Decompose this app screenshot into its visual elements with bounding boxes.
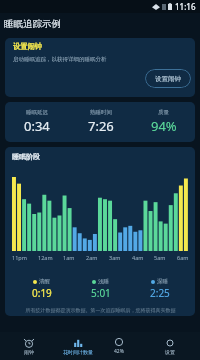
staticText: 0:19	[32, 286, 52, 300]
staticText: 闹钟	[24, 349, 34, 355]
staticText: 5am	[154, 254, 166, 261]
staticText: 3am	[109, 254, 121, 261]
button[interactable]: Alarm	[0, 332, 58, 360]
button[interactable]: Battery	[98, 332, 140, 360]
staticText: 熟睡时间	[90, 109, 112, 116]
staticText: 设置闹钟	[13, 42, 42, 51]
staticText: 4am	[132, 254, 144, 261]
staticText: 94%	[151, 117, 177, 135]
staticText: 睡眠阶段	[12, 152, 40, 161]
staticText: 启动睡眠追踪，以获得详细的睡眠分析	[13, 56, 107, 63]
button[interactable]: 熟睡时间	[69, 102, 132, 142]
staticText: 所有统计数据都是演示数据。第一次追踪睡眠后，您将获得真实数据	[12, 307, 189, 313]
staticText: 清醒	[39, 278, 50, 285]
staticText: 深睡	[157, 278, 168, 285]
staticText: 11pm	[12, 254, 27, 261]
staticText: 浅睡	[98, 278, 109, 285]
staticText: 7:26	[88, 117, 114, 135]
staticText: 0:34	[24, 117, 50, 135]
button[interactable]: Statistics	[58, 332, 98, 360]
staticText: 设置	[165, 349, 175, 355]
staticText: 睡眠延迟	[26, 109, 48, 116]
staticText: 质量	[158, 109, 169, 116]
staticText: 42%	[114, 348, 124, 355]
staticText: 11:16	[175, 1, 196, 12]
staticText: 睡眠追踪示例	[4, 18, 61, 30]
button[interactable]: 设置闹钟	[145, 69, 191, 88]
staticText: 设置闹钟	[155, 75, 181, 83]
button[interactable]: Settings	[140, 332, 200, 360]
button[interactable]: 质量	[132, 102, 195, 142]
staticText: 12am	[38, 254, 53, 261]
staticText: 1am	[63, 254, 75, 261]
staticText: 2:25	[150, 286, 170, 300]
staticText: 6am	[177, 254, 189, 261]
staticText: 5:01	[91, 286, 111, 300]
button[interactable]: 睡眠延迟	[5, 102, 69, 142]
staticText: 花时间计数量	[63, 349, 93, 355]
staticText: 2am	[86, 254, 98, 261]
